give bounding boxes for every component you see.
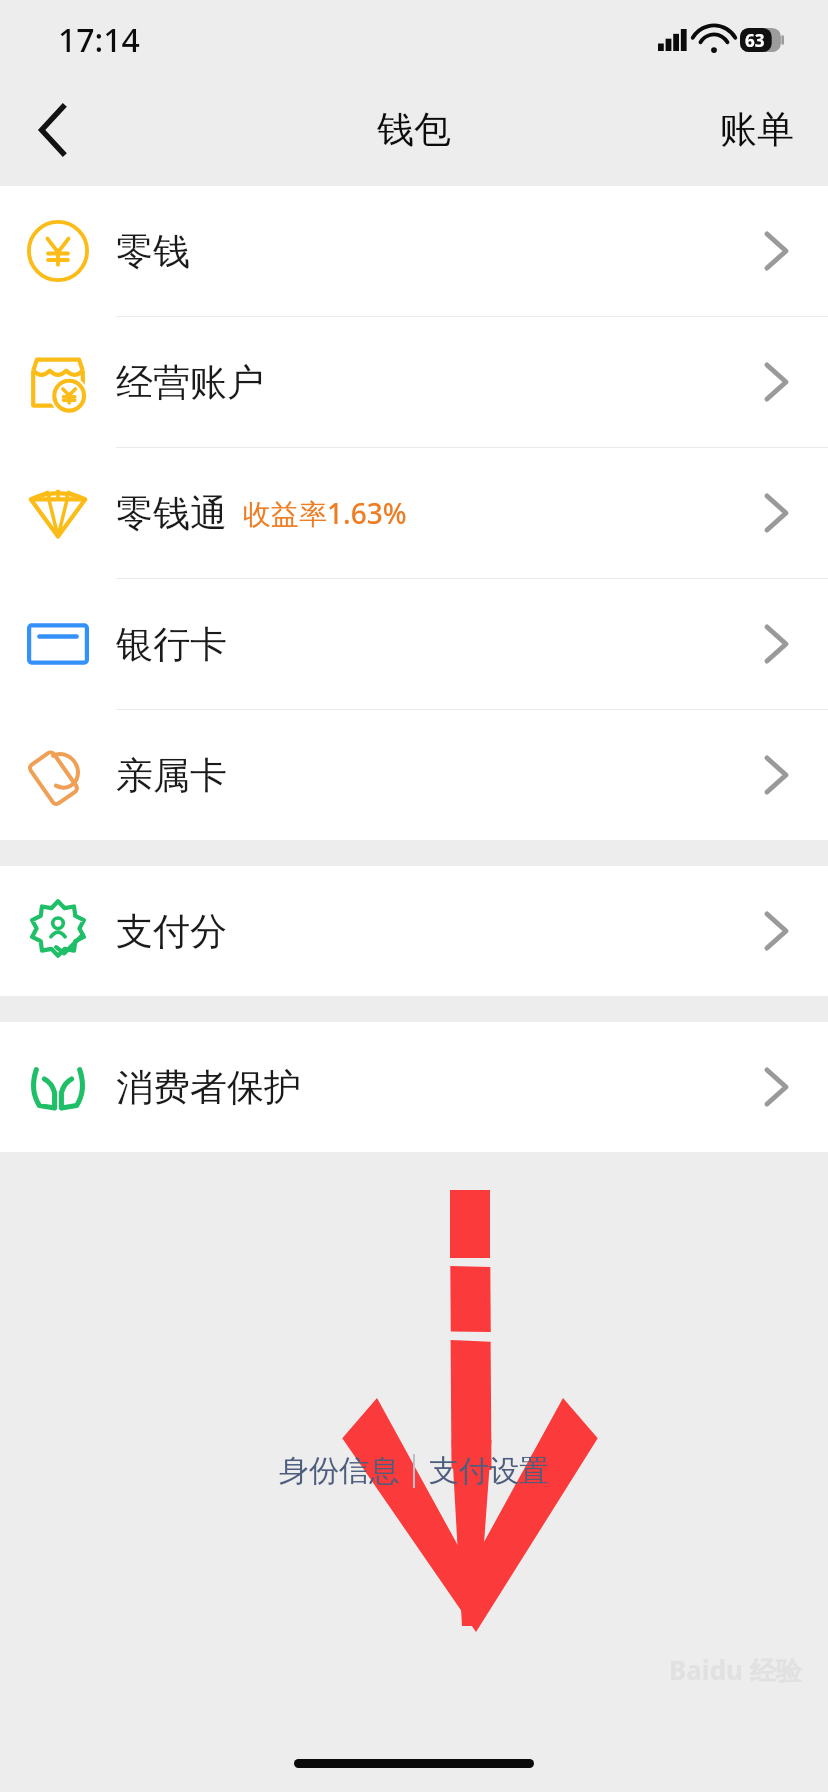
staticText: 银行卡 xyxy=(116,621,227,668)
button[interactable]: 经营账户 xyxy=(0,317,828,447)
staticText: 支付设置 xyxy=(429,1452,549,1490)
button[interactable]: 银行卡 xyxy=(0,579,828,709)
staticText: Baidu 经验 xyxy=(669,1652,802,1688)
button[interactable]: Back xyxy=(18,94,90,166)
staticText: 经营账户 xyxy=(116,359,264,406)
staticText: 账单 xyxy=(720,106,794,153)
staticText: 身份信息 xyxy=(279,1452,399,1490)
button[interactable]: 零钱 xyxy=(0,186,828,316)
staticText: 63 xyxy=(745,29,765,52)
button[interactable]: 消费者保护 xyxy=(0,1022,828,1152)
staticText: 消费者保护 xyxy=(116,1064,301,1111)
button[interactable]: 身份信息 xyxy=(265,1442,413,1500)
button[interactable]: 支付分 xyxy=(0,866,828,996)
staticText: 支付分 xyxy=(116,908,227,955)
button[interactable]: 账单 xyxy=(686,90,828,169)
button[interactable]: 亲属卡 xyxy=(0,710,828,840)
staticText: 零钱 xyxy=(116,228,190,275)
staticText: 钱包 xyxy=(377,106,451,153)
staticText: 收益率1.63% xyxy=(243,494,407,532)
staticText: 零钱通 xyxy=(116,490,227,537)
staticText: 17:14 xyxy=(58,18,140,62)
button[interactable]: 零钱通 xyxy=(0,448,828,578)
button[interactable]: 支付设置 xyxy=(415,1442,563,1500)
staticText: 亲属卡 xyxy=(116,752,227,799)
